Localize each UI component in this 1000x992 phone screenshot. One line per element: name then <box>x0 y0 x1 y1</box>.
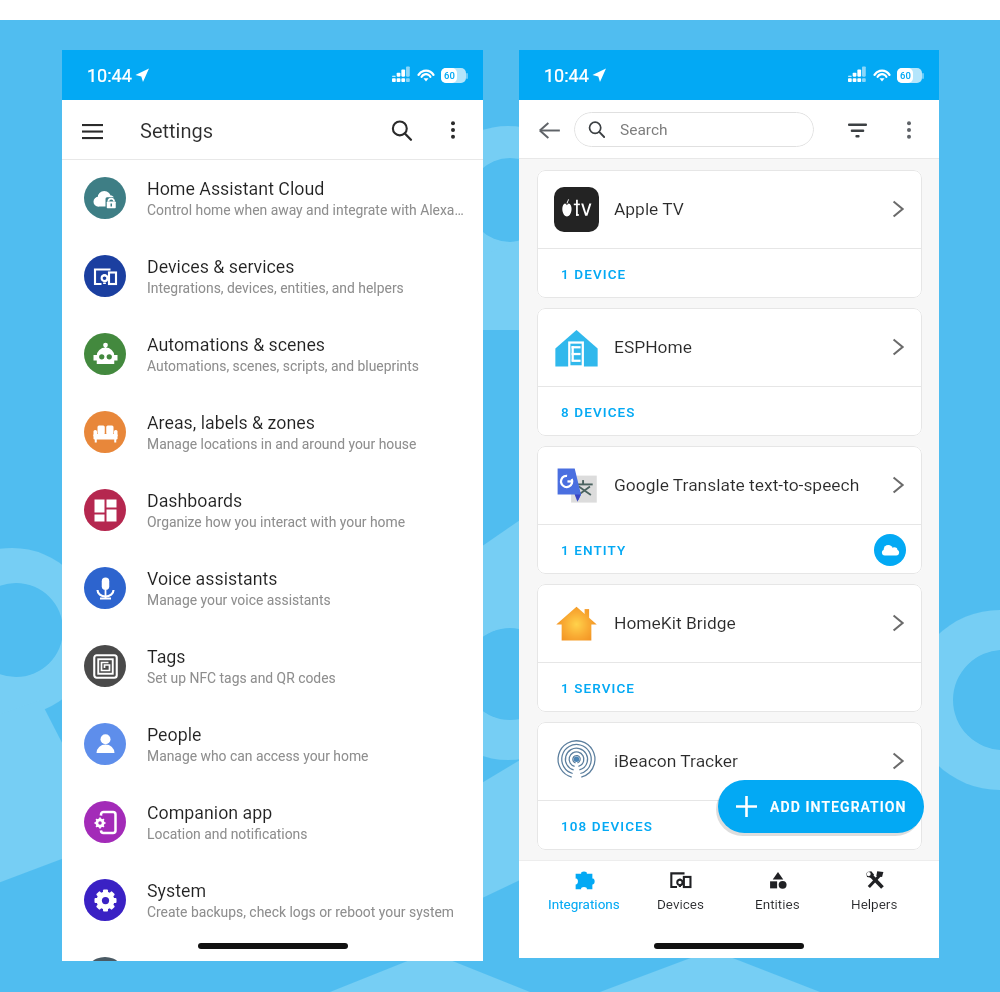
staticText: Location and notifications <box>147 826 308 842</box>
staticText: Manage locations in and around your hous… <box>147 436 417 452</box>
staticText: Devices & services <box>147 256 295 277</box>
staticText: Apple TV <box>614 199 883 219</box>
staticText: 10:44 <box>87 65 132 86</box>
button[interactable]: Google Translate text-to-speech <box>537 446 922 524</box>
button[interactable]: Devices <box>632 861 729 919</box>
staticText: 8 DEVICES <box>561 404 636 420</box>
button[interactable]: People <box>62 705 483 783</box>
staticText: Areas, labels & zones <box>147 412 315 433</box>
button[interactable]: 108 DEVICES <box>537 801 922 850</box>
staticText: Create backups, check logs or reboot you… <box>147 904 454 920</box>
button[interactable]: Entities <box>729 861 826 919</box>
staticText: Organize how you interact with your home <box>147 514 406 530</box>
staticText: Helpers <box>851 896 898 912</box>
staticText: 108 DEVICES <box>561 818 654 834</box>
staticText: Voice assistants <box>147 568 278 589</box>
button[interactable]: Search <box>574 112 814 147</box>
button[interactable]: System <box>62 861 483 939</box>
staticText: iBeacon Tracker <box>614 751 883 771</box>
staticText: 60 <box>444 70 455 81</box>
staticText: 10:44 <box>544 65 589 86</box>
staticText: Integrations <box>548 896 620 912</box>
button[interactable]: More options <box>433 110 473 150</box>
button[interactable]: Tags <box>62 627 483 705</box>
staticText: 1 ENTITY <box>561 542 627 558</box>
staticText: Home Assistant Cloud <box>147 178 325 199</box>
staticText: Google Translate text-to-speech <box>614 475 883 495</box>
staticText: Integrations, devices, entities, and hel… <box>147 280 404 296</box>
staticText: ESPHome <box>614 337 883 357</box>
staticText: Search <box>620 121 668 139</box>
staticText: Dashboards <box>147 490 243 511</box>
staticText: Tags <box>147 646 186 667</box>
button[interactable]: Devices & services <box>62 237 483 315</box>
staticText: Automations & scenes <box>147 334 326 355</box>
button[interactable]: ESPHome <box>537 308 922 386</box>
staticText: HomeKit Bridge <box>614 613 883 633</box>
button[interactable]: Back <box>529 110 569 150</box>
button[interactable]: Areas, labels & zones <box>62 393 483 471</box>
button[interactable]: Apple TV <box>537 170 922 248</box>
staticText: Automations, scenes, scripts, and bluepr… <box>147 358 419 374</box>
staticText: System <box>147 880 207 901</box>
staticText: People <box>147 724 202 745</box>
button[interactable]: Voice assistants <box>62 549 483 627</box>
staticText: Devices <box>657 896 704 912</box>
button[interactable]: HomeKit Bridge <box>537 584 922 662</box>
button[interactable]: 8 DEVICES <box>537 387 922 436</box>
button[interactable]: Automations & scenes <box>62 315 483 393</box>
staticText: 1 SERVICE <box>561 680 636 696</box>
staticText: 60 <box>900 70 911 81</box>
button[interactable]: Menu <box>72 110 112 150</box>
staticText: 1 DEVICE <box>561 266 627 282</box>
button[interactable]: Dashboards <box>62 471 483 549</box>
button[interactable]: Helpers <box>826 861 923 919</box>
button[interactable]: About <box>62 939 483 961</box>
staticText: Set up NFC tags and QR codes <box>147 670 336 686</box>
button[interactable]: More options <box>888 109 930 151</box>
button[interactable]: 1 ENTITY <box>537 525 922 574</box>
button[interactable]: Home Assistant Cloud <box>62 159 483 237</box>
button[interactable]: Filter <box>836 109 878 151</box>
staticText: Companion app <box>147 802 273 823</box>
staticText: Entities <box>755 896 800 912</box>
staticText: ADD INTEGRATION <box>770 799 907 815</box>
button[interactable]: Search <box>379 108 423 152</box>
button[interactable]: ADD INTEGRATION <box>718 780 924 833</box>
button[interactable]: iBeacon Tracker <box>537 722 922 800</box>
button[interactable]: Companion app <box>62 783 483 861</box>
staticText: Manage who can access your home <box>147 748 369 764</box>
button[interactable]: Integrations <box>535 861 632 919</box>
staticText: Control home when away and integrate wit… <box>147 202 464 218</box>
button[interactable]: 1 SERVICE <box>537 663 922 712</box>
staticText: Manage your voice assistants <box>147 592 331 608</box>
button[interactable]: 1 DEVICE <box>537 249 922 298</box>
staticText: Settings <box>140 119 214 142</box>
